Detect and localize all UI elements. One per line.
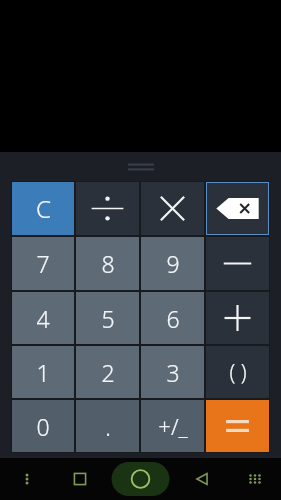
button[interactable]: Clear [12,182,74,235]
button[interactable]: Decimal point [76,400,139,452]
staticText: 1 [36,357,50,388]
staticText: 2 [101,357,115,388]
button[interactable]: 1 [12,346,74,398]
button[interactable]: Minus [206,237,269,290]
button[interactable]: 4 [12,292,74,344]
staticText: 0 [36,411,50,442]
button[interactable]: Recents [53,458,106,500]
button[interactable]: 6 [141,292,204,344]
button[interactable]: Backspace [206,182,269,235]
button[interactable]: All apps [228,458,281,500]
button[interactable]: Home [106,458,175,500]
staticText: 4 [36,303,50,334]
button[interactable]: Multiply [141,182,204,235]
button[interactable]: Menu [0,458,53,500]
staticText: ( ) [229,358,247,387]
staticText: 9 [166,248,180,279]
button[interactable]: Equals [206,400,269,452]
button[interactable]: 3 [141,346,204,398]
button[interactable]: 2 [76,346,139,398]
button[interactable]: Plus or minus [141,400,204,452]
button[interactable]: Plus [206,292,269,344]
button[interactable]: 7 [12,237,74,290]
button[interactable]: 8 [76,237,139,290]
staticText: . [105,411,111,442]
button[interactable]: Divide [76,182,139,235]
staticText: 3 [166,357,180,388]
button[interactable]: Parentheses [206,346,269,398]
staticText: 8 [101,248,115,279]
button[interactable]: Back [175,458,228,500]
staticText: 6 [166,303,180,334]
staticText: C [36,192,51,225]
staticText: 5 [101,303,115,334]
button[interactable]: 0 [12,400,74,452]
staticText: 7 [36,248,50,279]
button[interactable]: 5 [76,292,139,344]
staticText: +/_ [158,411,188,441]
button[interactable]: 9 [141,237,204,290]
